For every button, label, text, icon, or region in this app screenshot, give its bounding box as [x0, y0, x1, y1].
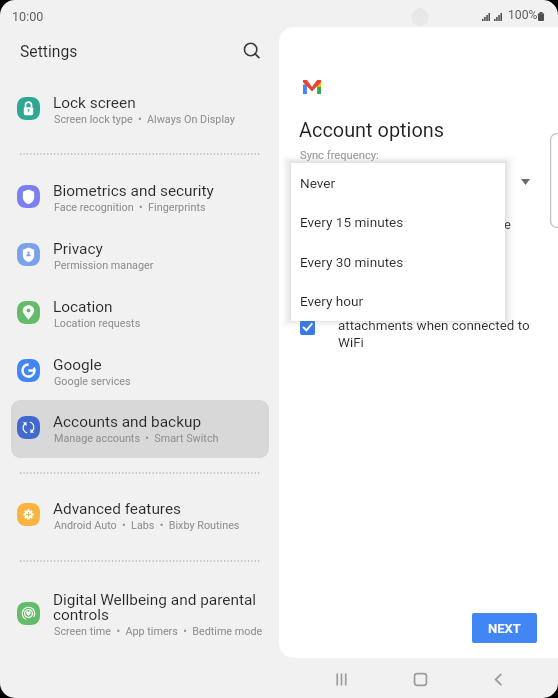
staticText: Screen lock type • Always On Display	[54, 113, 235, 126]
staticText: Privacy	[53, 240, 103, 258]
staticText: Every 15 minutes	[300, 214, 404, 230]
button[interactable]	[11, 285, 269, 343]
staticText: Every 30 minutes	[300, 254, 404, 270]
staticText: Every hour	[300, 293, 364, 309]
staticText: 100%	[508, 8, 538, 22]
button[interactable]: Never	[291, 163, 505, 202]
button[interactable]	[11, 169, 269, 227]
staticText: Location	[53, 298, 113, 316]
staticText: 10:00	[12, 9, 44, 24]
staticText: Manage accounts • Smart Switch	[54, 432, 219, 445]
staticText: Android Auto • Labs • Bixby Routines	[54, 519, 240, 532]
staticText: Permission manager	[54, 259, 154, 272]
button[interactable]	[11, 400, 269, 458]
staticText: Biometrics and security	[53, 182, 214, 200]
button[interactable]: Home	[401, 660, 439, 698]
button[interactable]: Download attachments	[300, 320, 315, 335]
button[interactable]	[11, 343, 269, 401]
button[interactable]: Every hour	[291, 281, 505, 320]
button[interactable]	[11, 578, 269, 651]
staticText: Digital Wellbeing and parental controls	[53, 591, 257, 624]
button[interactable]	[11, 81, 269, 139]
button[interactable]	[11, 487, 269, 545]
staticText: Location requests	[54, 317, 141, 330]
button[interactable]: NEXT	[472, 613, 537, 643]
staticText: Screen time • App timers • Bedtime mode	[54, 625, 263, 638]
staticText: attachments when connected to WiFi	[338, 318, 547, 351]
staticText: Never	[300, 175, 336, 191]
staticText: Google	[53, 356, 102, 374]
staticText: Accounts and backup	[53, 413, 202, 431]
staticText: NEXT	[488, 621, 521, 636]
staticText: Lock screen	[53, 94, 136, 112]
button[interactable]: Every 15 minutes	[291, 202, 505, 241]
staticText: Advanced features	[53, 500, 182, 518]
staticText: Face recognition • Fingerprints	[54, 201, 206, 214]
staticText: Account options	[299, 119, 444, 142]
staticText: Google services	[54, 375, 131, 388]
staticText: Settings	[20, 42, 78, 60]
staticText: e	[504, 217, 511, 232]
button[interactable]: Search	[235, 34, 266, 65]
button[interactable]: Every 30 minutes	[291, 242, 505, 281]
button[interactable]: Recent apps	[322, 660, 360, 698]
button[interactable]	[11, 227, 269, 285]
button[interactable]: Back	[479, 660, 517, 698]
staticText: Sync frequency:	[300, 149, 379, 162]
